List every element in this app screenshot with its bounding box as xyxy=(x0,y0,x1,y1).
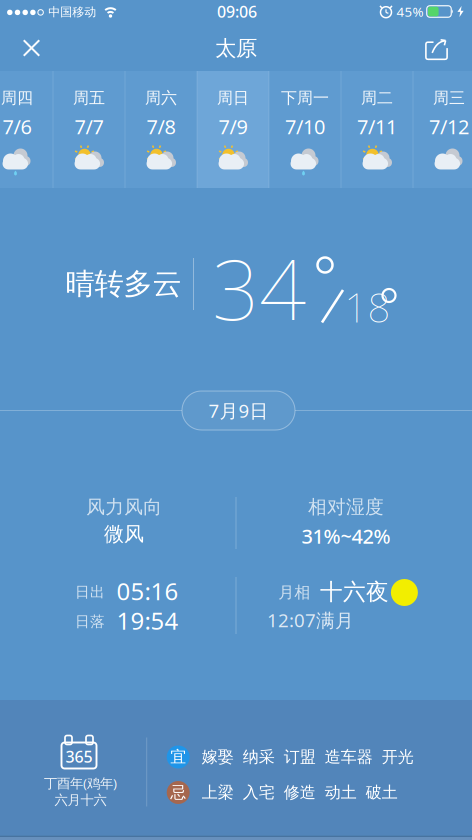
button[interactable]: 忌 xyxy=(167,781,398,804)
staticText: 六月十六 xyxy=(54,792,106,808)
staticText: 09:06 xyxy=(217,1,257,22)
staticText: 修造 xyxy=(284,783,316,802)
staticText: 19:54 xyxy=(116,605,178,636)
staticText: 7/11 xyxy=(357,113,397,140)
staticText: 31%~42% xyxy=(301,523,390,549)
button[interactable]: Share xyxy=(417,31,456,68)
staticText: 周二 xyxy=(361,88,393,108)
button[interactable]: 宜 xyxy=(167,745,414,768)
button[interactable]: 周四 xyxy=(0,71,53,188)
staticText: 上梁 xyxy=(202,783,234,802)
button[interactable]: 周五 xyxy=(53,71,125,188)
staticText: 入宅 xyxy=(243,783,275,802)
staticText: 365 xyxy=(65,746,92,767)
staticText: 7/12 xyxy=(429,113,469,140)
staticText: 周三 xyxy=(433,88,465,108)
staticText: 破土 xyxy=(366,783,398,802)
staticText: 7/7 xyxy=(74,113,103,140)
staticText: 中国移动 xyxy=(48,5,96,19)
staticText: 订盟 xyxy=(284,747,316,767)
button[interactable]: 下周一 xyxy=(269,71,341,188)
staticText: 十六夜 xyxy=(320,578,389,606)
staticText: 忌 xyxy=(170,783,186,802)
staticText: 7/9 xyxy=(218,113,247,140)
staticText: 34 xyxy=(212,233,306,343)
staticText: 周四 xyxy=(1,88,33,108)
button[interactable]: 周日 xyxy=(197,71,269,188)
staticText: 晴转多云 xyxy=(65,266,181,302)
staticText: 7/6 xyxy=(2,113,31,140)
button[interactable]: 周六 xyxy=(125,71,197,188)
staticText: 动土 xyxy=(325,783,357,802)
staticText: 下周一 xyxy=(281,88,329,108)
staticText: 45% xyxy=(396,3,423,20)
staticText: 丁酉年(鸡年) xyxy=(44,774,117,792)
staticText: 造车器 xyxy=(325,747,373,767)
staticText: 纳采 xyxy=(243,747,275,767)
staticText: 风力风向 xyxy=(86,495,162,518)
staticText: 周日 xyxy=(217,88,249,108)
staticText: 05:16 xyxy=(116,575,178,607)
button[interactable]: Close xyxy=(15,31,48,65)
staticText: 月相 xyxy=(278,583,310,602)
staticText: 日出 xyxy=(75,583,105,601)
staticText: 周六 xyxy=(145,88,177,108)
button[interactable]: 周三 xyxy=(413,71,472,188)
staticText: 12:07满月 xyxy=(267,608,354,632)
staticText: 7/8 xyxy=(146,113,175,140)
staticText: 嫁娶 xyxy=(202,747,234,767)
staticText: 18 xyxy=(344,280,390,333)
staticText: 相对湿度 xyxy=(308,495,384,518)
staticText: 7月9日 xyxy=(208,398,268,423)
staticText: 宜 xyxy=(170,747,186,767)
staticText: 太原 xyxy=(215,35,257,62)
staticText: 微风 xyxy=(104,522,144,546)
staticText: 7/10 xyxy=(285,113,325,140)
button[interactable]: 周二 xyxy=(341,71,413,188)
staticText: 日落 xyxy=(75,612,105,630)
staticText: 周五 xyxy=(73,88,105,108)
staticText: 开光 xyxy=(382,747,414,767)
